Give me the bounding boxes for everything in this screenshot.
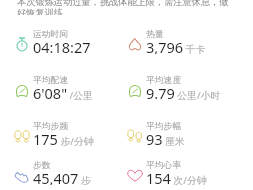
button[interactable]: 平均步频 (14, 113, 127, 159)
staticText: 平均步频 (33, 121, 69, 132)
staticText: 平均心率 (146, 160, 182, 171)
button[interactable]: 本次锻炼运动过量，挑战体能上限，需注意休息，做好恢复训练。 (0, 0, 253, 19)
button[interactable]: 平均心率 (127, 159, 253, 190)
button[interactable]: 运动时间 (14, 21, 127, 67)
staticText: 步数 (33, 160, 51, 171)
button[interactable]: 平均步幅 (127, 113, 253, 159)
staticText: 平均步幅 (146, 121, 182, 132)
staticText: 04:18:27 (33, 37, 91, 54)
staticText: 6'08" /公里 (33, 83, 93, 100)
button[interactable]: 步数 (14, 159, 127, 190)
staticText: 运动时间 (33, 29, 69, 40)
staticText: 热量 (146, 29, 164, 40)
staticText: 本次锻炼运动过量，挑战体能上限，需注意休息，做好恢复训练。 (17, 0, 236, 15)
staticText: 93 厘米 (146, 129, 185, 146)
staticText: 9.79 公里/小时 (146, 83, 221, 100)
staticText: 175 步/分钟 (33, 129, 94, 146)
button[interactable]: 热量 (127, 21, 253, 67)
staticText: 平均配速 (33, 75, 69, 86)
staticText: 45,407 步 (33, 168, 91, 185)
button[interactable]: 平均配速 (14, 67, 127, 113)
staticText: 平均速度 (146, 75, 182, 86)
staticText: 154 次/分钟 (146, 168, 207, 185)
button[interactable]: 平均速度 (127, 67, 253, 113)
staticText: 3,796 千卡 (146, 37, 206, 54)
